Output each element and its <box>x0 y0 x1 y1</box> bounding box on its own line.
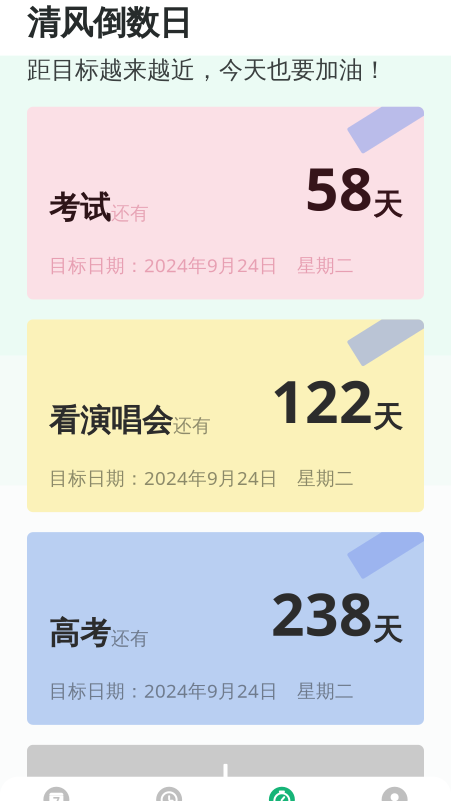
staticText: 距目标越来越近，今天也要加油！ <box>27 55 387 85</box>
staticText: 238 <box>271 574 373 652</box>
staticText: 清风倒数日 <box>27 2 192 43</box>
staticText: 还有 <box>173 414 211 437</box>
staticText: 还有 <box>111 202 149 225</box>
staticText: 高考 <box>49 614 111 652</box>
button[interactable]: 清风专注 <box>113 777 226 801</box>
staticText: 7 <box>53 793 60 801</box>
button[interactable]: 个人中心 <box>338 777 451 801</box>
staticText: 58 <box>305 149 373 227</box>
staticText: 目标日期：2024年9月24日 星期二 <box>49 253 354 277</box>
button[interactable]: 考试 <box>27 107 424 299</box>
staticText: 122 <box>271 361 373 439</box>
staticText: 天 <box>373 187 402 223</box>
staticText: 目标日期：2024年9月24日 星期二 <box>49 678 354 703</box>
staticText: 看演唱会 <box>49 402 173 439</box>
staticText: 考试 <box>49 189 111 227</box>
staticText: 目标日期：2024年9月24日 星期二 <box>49 465 354 490</box>
button[interactable]: 添加事件 <box>27 745 424 801</box>
button[interactable]: 清风倒数 <box>225 777 338 801</box>
button[interactable]: 看演唱会 <box>27 319 424 512</box>
button[interactable]: 7 <box>0 777 113 801</box>
staticText: 还有 <box>111 627 149 650</box>
staticText: 天 <box>373 612 402 648</box>
staticText: 天 <box>373 399 402 435</box>
button[interactable]: 高考 <box>27 532 424 725</box>
